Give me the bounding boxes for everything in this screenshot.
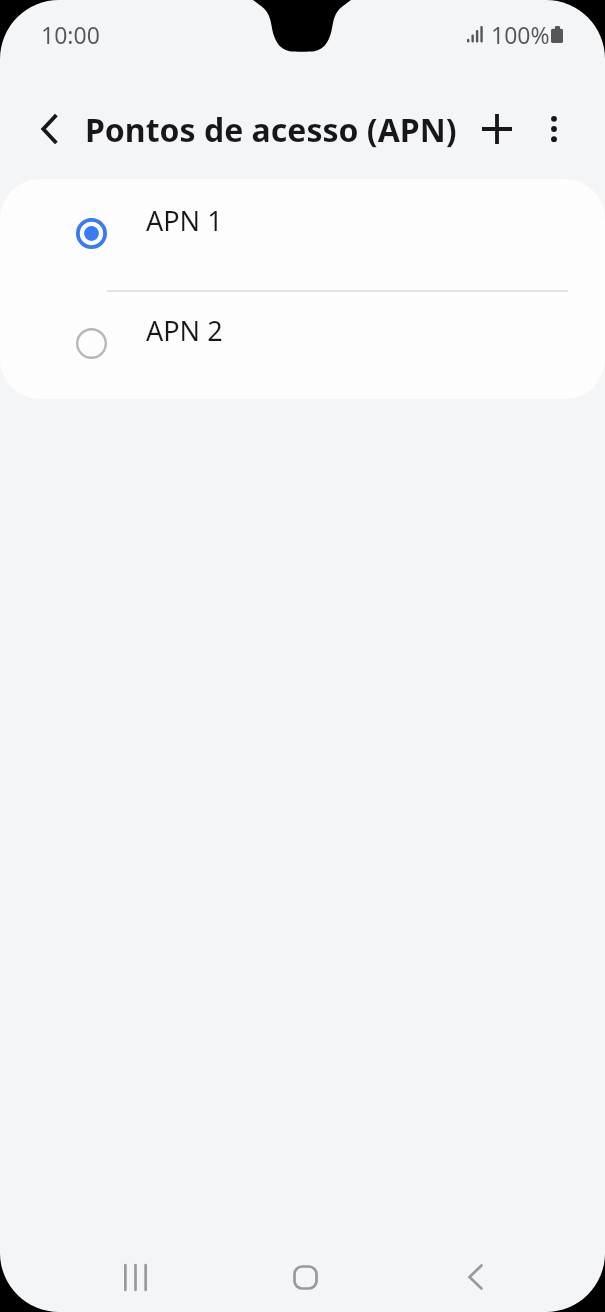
button[interactable]: Home bbox=[245, 1236, 365, 1312]
staticText: 10:00 bbox=[41, 19, 100, 50]
button[interactable]: Recents bbox=[75, 1236, 195, 1312]
button[interactable]: More options bbox=[530, 105, 578, 153]
staticText: Pontos de acesso (APN) bbox=[85, 108, 457, 152]
button[interactable]: APN 1 bbox=[0, 179, 605, 289]
button[interactable]: Back bbox=[415, 1236, 535, 1312]
staticText: 100% bbox=[491, 19, 550, 50]
button[interactable]: Back bbox=[26, 105, 74, 153]
staticText: APN 1 bbox=[146, 202, 223, 239]
button[interactable]: APN 2 bbox=[0, 289, 605, 399]
button[interactable]: Add bbox=[473, 105, 521, 153]
staticText: APN 2 bbox=[146, 312, 223, 349]
